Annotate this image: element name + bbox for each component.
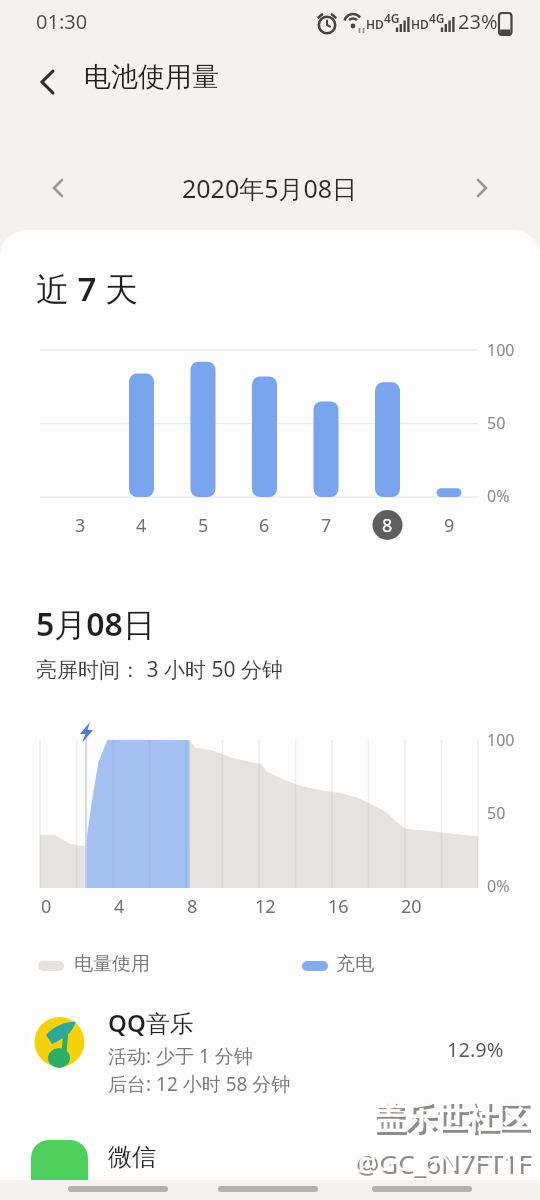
staticText: HD [411,16,429,32]
staticText: 100 [487,339,515,361]
staticText: 0 [41,894,52,919]
button[interactable]: QQ音乐 [0,1000,540,1106]
staticText: 活动: 少于 1 分钟 [108,1043,253,1069]
staticText: 16 [328,894,349,919]
staticText: 12 [255,894,276,919]
staticText: 0% [487,875,510,897]
staticText: 4 [136,513,147,538]
staticText: 9 [444,513,455,538]
staticText: 5 [198,513,209,538]
staticText: 50 [487,412,506,434]
staticText: 2020年5月08日 [182,171,358,205]
button[interactable] [458,164,506,212]
staticText: 4G [384,10,400,26]
staticText: 近 7 天 [36,266,139,311]
staticText: 0% [487,485,510,507]
staticText: 充电 [336,952,374,976]
staticText: 8 [382,513,393,538]
staticText: 100 [487,729,515,751]
staticText: 12.9% [447,1036,504,1063]
staticText: 3 [75,513,86,538]
staticText: 8 [187,894,198,919]
staticText: HD [366,16,384,32]
staticText: 23% [458,8,498,35]
staticText: 4G [429,10,445,26]
staticText: @GC_6N7FT1F [353,1143,530,1178]
staticText: 7 [321,513,332,538]
staticText: 20 [401,894,422,919]
staticText: 后台: 12 小时 58 分钟 [108,1071,291,1097]
staticText: 50 [487,802,506,824]
staticText: 5月08日 [36,602,155,646]
button[interactable] [34,164,82,212]
staticText: 4 [114,894,125,919]
button[interactable]: 微信 [0,1130,540,1200]
staticText: 6 [259,513,270,538]
staticText: 盖乐世社区 [373,1098,528,1137]
staticText: 亮屏时间： 3 小时 50 分钟 [36,655,283,684]
staticText: QQ音乐 [108,1006,194,1039]
staticText: 微信 [108,1142,156,1172]
staticText: 电池使用量 [84,60,219,94]
staticText: 01:30 [36,8,88,35]
staticText: 电量使用 [74,952,150,976]
staticText: 盖乐世社区 [376,1101,531,1140]
staticText: @GC_6N7FT1F [356,1146,533,1181]
button[interactable] [24,58,72,106]
